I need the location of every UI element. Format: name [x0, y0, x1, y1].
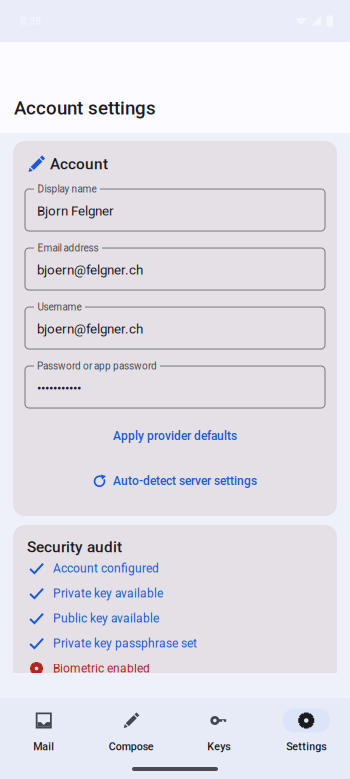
- staticText: Mail: [33, 740, 54, 753]
- staticText: Biometric enabled: [53, 661, 150, 675]
- staticText: bjoern@felgner.ch: [37, 321, 143, 337]
- staticText: Keys: [207, 740, 230, 753]
- staticText: Private key passphrase set: [53, 636, 197, 650]
- staticText: bjoern@felgner.ch: [37, 262, 143, 278]
- button[interactable]: Compose: [87, 707, 175, 755]
- staticText: Private key available: [53, 586, 163, 600]
- staticText: Security audit: [27, 538, 122, 556]
- staticText: Auto-detect server settings: [113, 474, 257, 488]
- staticText: Compose: [109, 740, 154, 753]
- staticText: Public key available: [53, 611, 159, 625]
- button[interactable]: Mail: [0, 707, 87, 755]
- staticText: Display name: [37, 183, 96, 195]
- staticText: Email address: [37, 242, 98, 254]
- button[interactable]: Apply provider defaults: [13, 414, 337, 458]
- staticText: Account settings: [14, 97, 156, 119]
- staticText: Bjorn Felgner: [37, 203, 114, 219]
- staticText: 8:38: [20, 15, 41, 27]
- button[interactable]: Keys: [175, 707, 262, 755]
- staticText: Account configured: [53, 561, 159, 575]
- staticText: Apply provider defaults: [113, 429, 237, 443]
- button[interactable]: Settings: [262, 707, 350, 755]
- staticText: Password or app password: [37, 360, 157, 372]
- staticText: Username: [37, 301, 81, 313]
- button[interactable]: Auto-detect server settings: [13, 458, 337, 504]
- staticText: •••••••••••: [37, 380, 81, 396]
- staticText: Account: [50, 155, 108, 173]
- staticText: Settings: [286, 740, 326, 753]
